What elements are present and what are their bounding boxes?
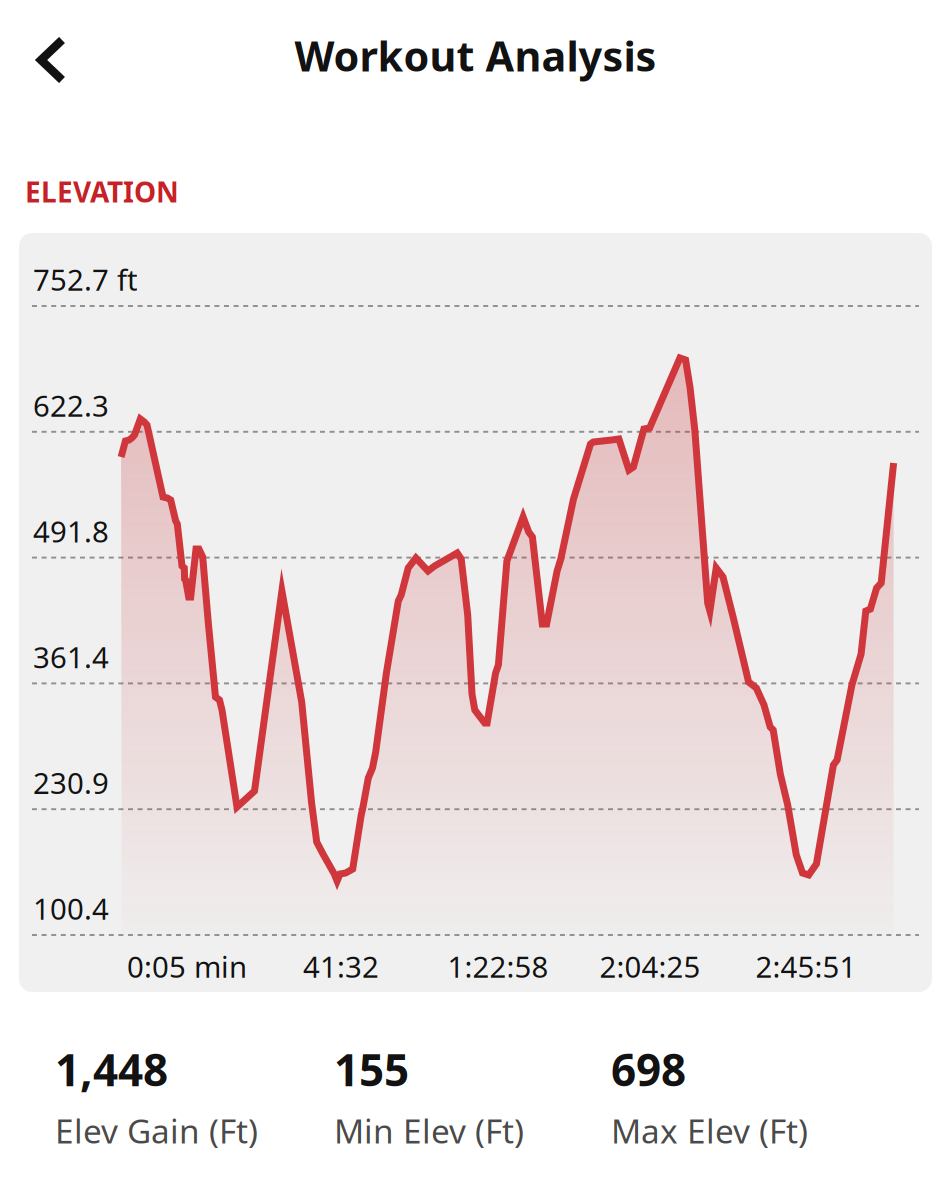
staticText: 1:22:58 <box>447 947 548 986</box>
staticText: 155 <box>334 1040 409 1098</box>
staticText: 2:04:25 <box>599 947 700 986</box>
staticText: 361.4 <box>33 637 109 676</box>
staticText: Max Elev (Ft) <box>611 1108 808 1153</box>
staticText: 2:45:51 <box>755 947 856 986</box>
staticText: Min Elev (Ft) <box>334 1108 524 1153</box>
staticText: 1,448 <box>55 1040 168 1098</box>
staticText: 230.9 <box>33 763 109 802</box>
staticText: 622.3 <box>33 386 109 425</box>
staticText: 698 <box>611 1040 686 1098</box>
staticText: ELEVATION <box>25 173 179 210</box>
staticText: 100.4 <box>33 889 109 928</box>
staticText: 491.8 <box>33 512 109 551</box>
staticText: Elev Gain (Ft) <box>55 1108 258 1153</box>
staticText: 0:05 min <box>127 947 247 986</box>
staticText: 752.7 ft <box>33 260 138 299</box>
staticText: Workout Analysis <box>294 28 656 83</box>
button[interactable]: Back <box>13 12 90 108</box>
staticText: 41:32 <box>303 947 379 986</box>
